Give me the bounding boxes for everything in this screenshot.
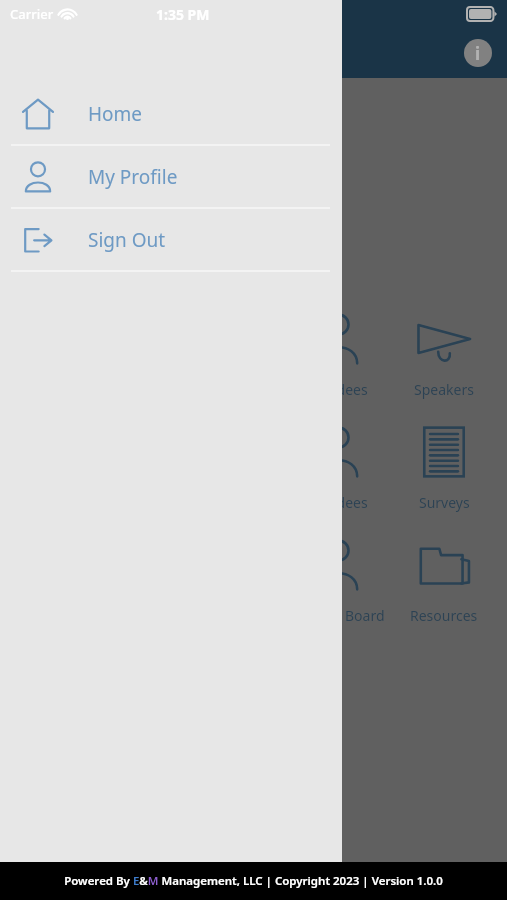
staticText: Message Board [283, 606, 385, 625]
button[interactable]: My Profile [0, 146, 342, 207]
staticText: Carrier [10, 5, 54, 23]
staticText: 1:35 PM [156, 5, 210, 24]
staticText: Speakers [414, 380, 474, 399]
staticText: Home [88, 101, 143, 127]
staticText: Powered By E&M Management, LLC | Copyrig… [64, 873, 443, 889]
button[interactable]: Resources [388, 536, 500, 625]
button[interactable]: Sign Out [0, 209, 342, 270]
staticText: Attendees [301, 380, 368, 399]
staticText: Resources [410, 606, 478, 625]
button[interactable]: Home [0, 83, 342, 144]
staticText: My Profile [88, 164, 178, 190]
button[interactable]: Attendees [282, 423, 386, 512]
button[interactable]: Message Board [282, 536, 386, 625]
staticText: Sign Out [88, 227, 166, 253]
button[interactable]: Attendees [282, 310, 386, 399]
button[interactable]: Speakers [388, 310, 500, 399]
staticText: Tap to configure the widget. [24, 158, 226, 178]
staticText: Attendees [301, 493, 368, 512]
staticText: i [475, 42, 481, 65]
button[interactable]: Surveys [388, 423, 500, 512]
button[interactable]: Information [461, 36, 495, 70]
staticText: Surveys [419, 493, 470, 512]
